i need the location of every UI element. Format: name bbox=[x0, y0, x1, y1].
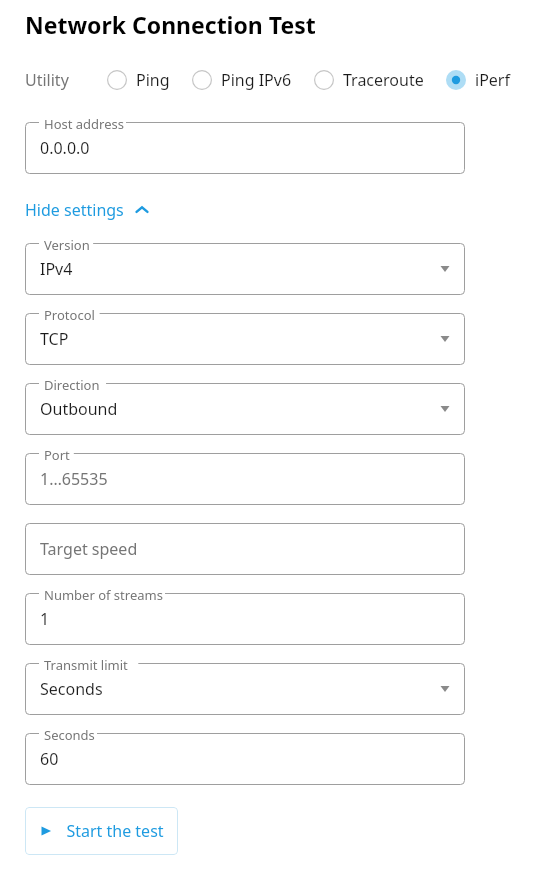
staticText: Host address bbox=[44, 115, 124, 133]
button[interactable]: Host address bbox=[25, 122, 465, 174]
staticText: Utility bbox=[25, 69, 69, 91]
staticText: IPv4 bbox=[40, 258, 73, 280]
staticText: 60 bbox=[40, 748, 59, 770]
staticText: 1 bbox=[40, 608, 50, 630]
staticText: Port bbox=[44, 446, 70, 464]
button[interactable]: Number of streams bbox=[25, 593, 465, 645]
button[interactable]: Seconds bbox=[25, 733, 465, 785]
button[interactable]: Direction bbox=[25, 383, 465, 435]
staticText: Transmit limit bbox=[44, 656, 128, 674]
staticText: Seconds bbox=[40, 678, 103, 700]
staticText: Seconds bbox=[44, 726, 95, 744]
staticText: Network Connection Test bbox=[25, 9, 316, 40]
staticText: Version bbox=[44, 236, 90, 254]
button[interactable]: Ping IPv6 bbox=[192, 69, 292, 91]
staticText: Direction bbox=[44, 376, 100, 394]
staticText: Start the test bbox=[66, 820, 164, 842]
staticText: TCP bbox=[40, 328, 69, 350]
staticText: Target speed bbox=[40, 538, 138, 560]
button[interactable]: Start the test bbox=[25, 807, 178, 855]
button[interactable]: iPerf bbox=[446, 69, 510, 91]
staticText: iPerf bbox=[475, 69, 510, 91]
button[interactable]: Ping bbox=[107, 69, 170, 91]
button[interactable]: Traceroute bbox=[314, 69, 424, 91]
staticText: Ping IPv6 bbox=[221, 69, 292, 91]
staticText: Outbound bbox=[40, 398, 118, 420]
staticText: 0.0.0.0 bbox=[40, 137, 90, 159]
staticText: Hide settings bbox=[25, 199, 124, 221]
button[interactable]: Version bbox=[25, 243, 465, 295]
staticText: Protocol bbox=[44, 306, 95, 324]
staticText: Number of streams bbox=[44, 586, 163, 604]
staticText: Traceroute bbox=[343, 69, 424, 91]
staticText: 1…65535 bbox=[40, 468, 108, 490]
staticText: Ping bbox=[136, 69, 170, 91]
button[interactable]: Target speed bbox=[25, 523, 465, 575]
button[interactable]: Transmit limit bbox=[25, 663, 465, 715]
button[interactable]: Hide settings bbox=[25, 198, 150, 222]
button[interactable]: Port bbox=[25, 453, 465, 505]
button[interactable]: Protocol bbox=[25, 313, 465, 365]
